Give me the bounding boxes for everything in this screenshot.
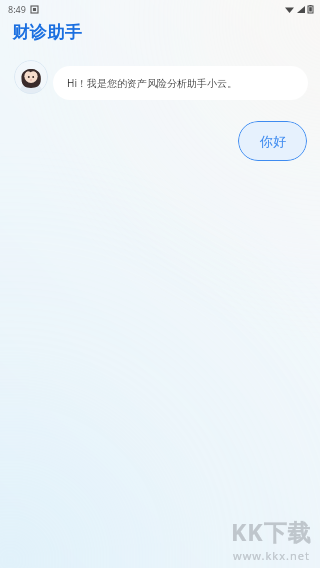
staticText: 财诊助手	[12, 22, 82, 43]
other: Assistant avatar	[14, 60, 48, 94]
button[interactable]: Hi！我是您的资产风险分析助手小云。	[53, 66, 308, 100]
staticText: 8:49	[8, 3, 26, 15]
button[interactable]: 你好	[238, 121, 307, 161]
staticText: 你好	[260, 133, 286, 149]
staticText: KK下载	[231, 516, 312, 547]
staticText: www.kkx.net	[233, 548, 310, 563]
staticText: Hi！我是您的资产风险分析助手小云。	[67, 76, 237, 90]
